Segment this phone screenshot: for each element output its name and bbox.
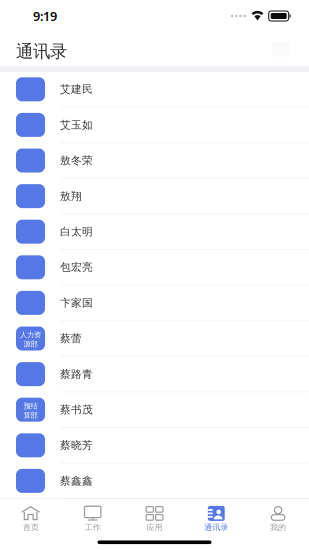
- button[interactable]: 我的: [247, 503, 309, 532]
- button[interactable]: 通讯录: [185, 503, 247, 532]
- button[interactable]: 白太明: [0, 214, 309, 250]
- staticText: 艾玉如: [60, 118, 93, 132]
- button[interactable]: 应用: [124, 503, 185, 532]
- button[interactable]: 蔡晓芳: [0, 428, 309, 464]
- staticText: 敖冬荣: [60, 154, 93, 167]
- staticText: 蔡路青: [60, 367, 93, 381]
- staticText: 人力资: [20, 330, 41, 339]
- button[interactable]: 工作: [62, 503, 124, 532]
- button[interactable]: 包宏亮: [0, 250, 309, 286]
- staticText: 蔡书茂: [60, 403, 93, 416]
- staticText: 应用: [146, 522, 162, 532]
- staticText: 算部: [23, 411, 37, 420]
- staticText: 卞家国: [60, 296, 93, 310]
- staticText: 白太明: [60, 225, 93, 238]
- staticText: 艾建民: [60, 83, 93, 96]
- button[interactable]: 敖冬荣: [0, 143, 309, 179]
- staticText: 蔡鑫鑫: [60, 474, 93, 488]
- button[interactable]: 艾建民: [0, 72, 309, 108]
- staticText: 我的: [270, 522, 286, 532]
- button[interactable]: 艾玉如: [0, 108, 309, 143]
- button[interactable]: 蔡路青: [0, 357, 309, 392]
- staticText: 蔡蕾: [60, 332, 82, 345]
- staticText: 通讯录: [204, 522, 228, 532]
- button[interactable]: 敖翔: [0, 179, 309, 214]
- staticText: 工作: [85, 522, 101, 532]
- staticText: 预结: [23, 401, 37, 411]
- staticText: 敖翔: [60, 189, 82, 203]
- button[interactable]: 首页: [0, 503, 62, 532]
- staticText: 包宏亮: [60, 261, 93, 274]
- button[interactable]: 卞家国: [0, 286, 309, 321]
- button[interactable]: 预结: [0, 392, 309, 428]
- staticText: 9:19: [33, 7, 57, 25]
- staticText: 蔡晓芳: [60, 439, 93, 452]
- staticText: 源部: [23, 339, 37, 349]
- button[interactable]: 蔡鑫鑫: [0, 464, 309, 499]
- staticText: 通讯录: [16, 41, 67, 62]
- button[interactable]: 人力资: [0, 321, 309, 357]
- staticText: 首页: [23, 522, 39, 532]
